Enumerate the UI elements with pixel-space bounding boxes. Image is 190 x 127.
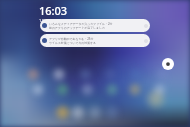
staticText: アプリが自動的であなたを・25分 ウイルス対策について今の対策する bbox=[49, 37, 142, 45]
button[interactable]: Expand bbox=[144, 24, 148, 28]
staticText: 1月9日 月曜日 bbox=[39, 18, 65, 23]
button[interactable]: いろんなメディアデータが入ったファイル・2分 前のアプリのアップデートが完了しま… bbox=[40, 19, 150, 32]
button[interactable]: Settings bbox=[162, 58, 174, 70]
button[interactable]: Expand bbox=[144, 39, 148, 43]
staticText: いろんなメディアデータが入ったファイル・2分 前のアプリのアップデートが完了しま… bbox=[49, 22, 142, 30]
staticText: 16:03 bbox=[39, 3, 68, 18]
button[interactable]: アプリが自動的であなたを・25分 ウイルス対策について今の対策する bbox=[40, 34, 150, 47]
